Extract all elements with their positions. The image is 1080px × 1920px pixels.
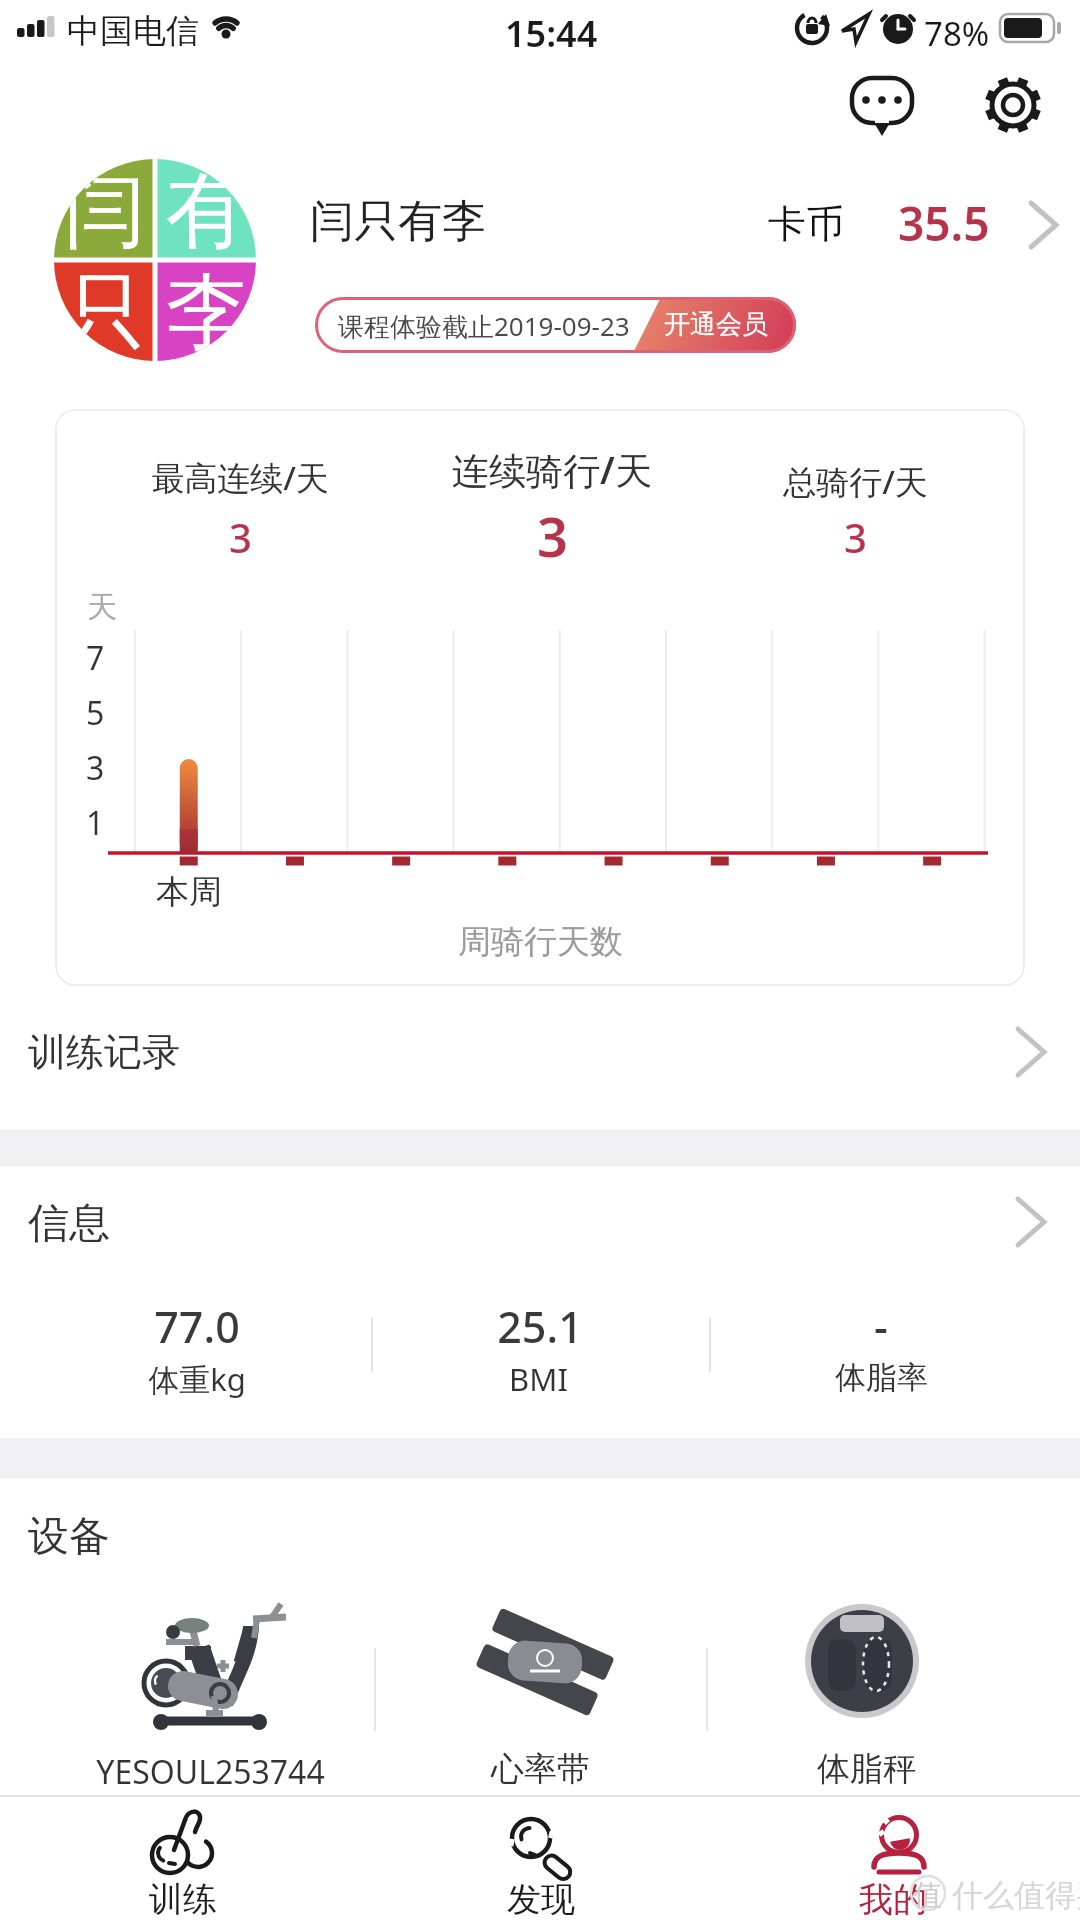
staticText: 设备 [28, 1511, 110, 1563]
staticText: 35.5 [898, 192, 990, 255]
button[interactable] [980, 70, 1048, 140]
button[interactable]: 闫 [54, 159, 256, 361]
button[interactable] [0, 1166, 1080, 1438]
staticText: 信息 [28, 1198, 110, 1250]
staticText: 3 [537, 499, 568, 573]
staticText: 天 [87, 588, 117, 626]
staticText: 我的 [859, 1878, 927, 1920]
staticText: 有 [166, 160, 248, 263]
staticText: 什么值得买 [952, 1876, 1080, 1915]
button[interactable]: 我的 [820, 1800, 965, 1918]
staticText: 训练 [149, 1878, 217, 1920]
button[interactable] [790, 1595, 950, 1785]
button[interactable]: 课程体验截止2019-09-23 [315, 297, 796, 353]
button[interactable] [740, 180, 1070, 260]
button[interactable]: 发现 [468, 1800, 613, 1918]
staticText: 周骑行天数 [458, 921, 623, 963]
staticText: 心率带 [491, 1748, 590, 1790]
staticText: 3 [86, 746, 105, 790]
staticText: 卡币 [768, 200, 844, 248]
staticText: 3 [229, 510, 252, 564]
staticText: 李 [166, 261, 248, 361]
staticText: - [874, 1297, 888, 1356]
staticText: 15:44 [505, 9, 598, 58]
staticText: 最高连续/天 [151, 455, 329, 500]
staticText: 总骑行/天 [783, 459, 928, 504]
staticText: 开通会员 [664, 308, 768, 341]
button[interactable] [460, 1595, 630, 1785]
staticText: 课程体验截止2019-09-23 [338, 308, 630, 344]
staticText: 体重kg [148, 1358, 246, 1400]
staticText: 训练记录 [28, 1028, 180, 1076]
button[interactable] [845, 70, 919, 142]
staticText: 中国电信 [67, 10, 199, 52]
staticText: 发现 [507, 1878, 575, 1920]
staticText: 1 [86, 801, 105, 845]
staticText: YESOUL253744 [96, 1750, 325, 1794]
staticText: 值 [913, 1877, 942, 1914]
staticText: BMI [509, 1358, 568, 1400]
staticText: 连续骑行/天 [452, 444, 652, 495]
staticText: 本周 [156, 871, 222, 913]
button[interactable]: 训练记录 [0, 990, 1080, 1130]
staticText: 78% [924, 11, 990, 56]
staticText: 闫只有李 [310, 194, 486, 249]
staticText: 3 [844, 510, 867, 564]
staticText: 77.0 [154, 1297, 240, 1356]
button[interactable]: 训练 [110, 1800, 255, 1918]
staticText: 体脂秤 [817, 1748, 916, 1790]
button[interactable] [120, 1595, 310, 1785]
staticText: 7 [86, 636, 105, 680]
staticText: 25.1 [497, 1297, 583, 1356]
staticText: 5 [86, 691, 105, 735]
staticText: 闫 [64, 160, 146, 263]
staticText: 体脂率 [835, 1358, 928, 1397]
staticText: 只 [64, 261, 146, 361]
